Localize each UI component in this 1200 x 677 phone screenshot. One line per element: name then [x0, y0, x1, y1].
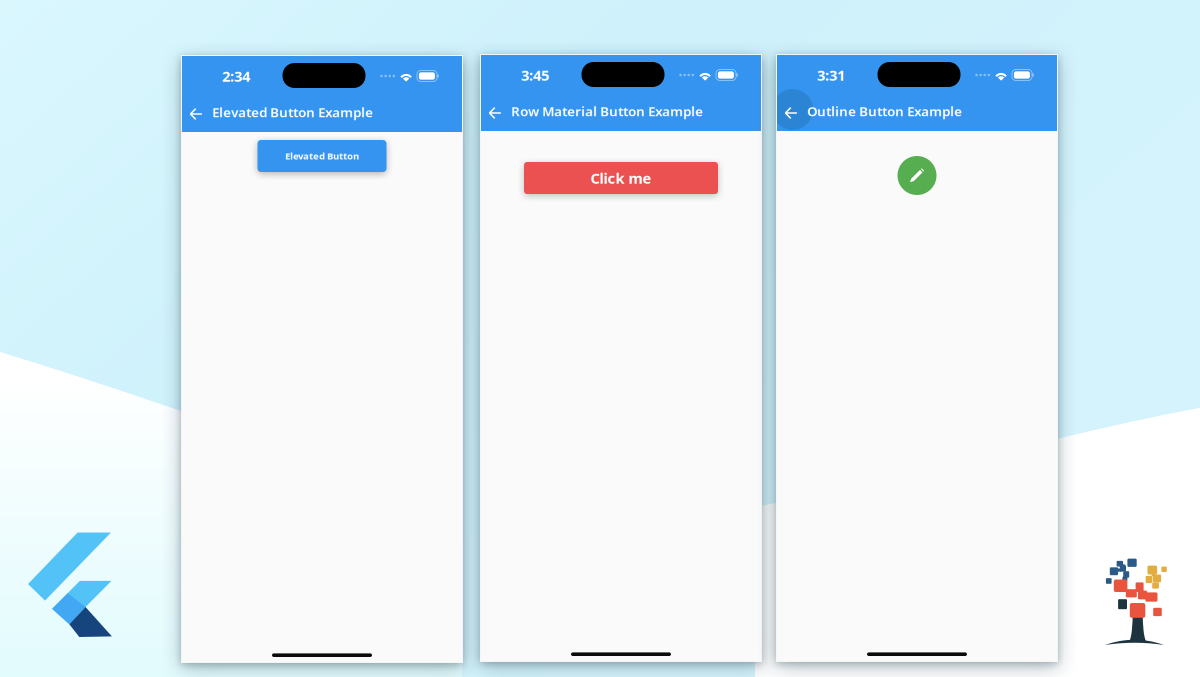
staticText: 2:34: [222, 66, 250, 86]
button[interactable]: Back: [780, 92, 802, 130]
staticText: 3:45: [521, 65, 549, 85]
staticText: Row Material Button Example: [511, 102, 703, 120]
staticText: 3:31: [817, 65, 845, 85]
button[interactable]: Back: [484, 92, 506, 130]
staticText: Outline Button Example: [807, 102, 962, 120]
button[interactable]: Elevated Button: [257, 140, 386, 172]
staticText: Click me: [590, 168, 651, 188]
button[interactable]: Click me: [524, 162, 718, 194]
button[interactable]: Edit: [897, 156, 936, 195]
button[interactable]: Back: [185, 93, 207, 131]
staticText: Elevated Button Example: [212, 103, 373, 121]
staticText: Elevated Button: [285, 150, 359, 162]
